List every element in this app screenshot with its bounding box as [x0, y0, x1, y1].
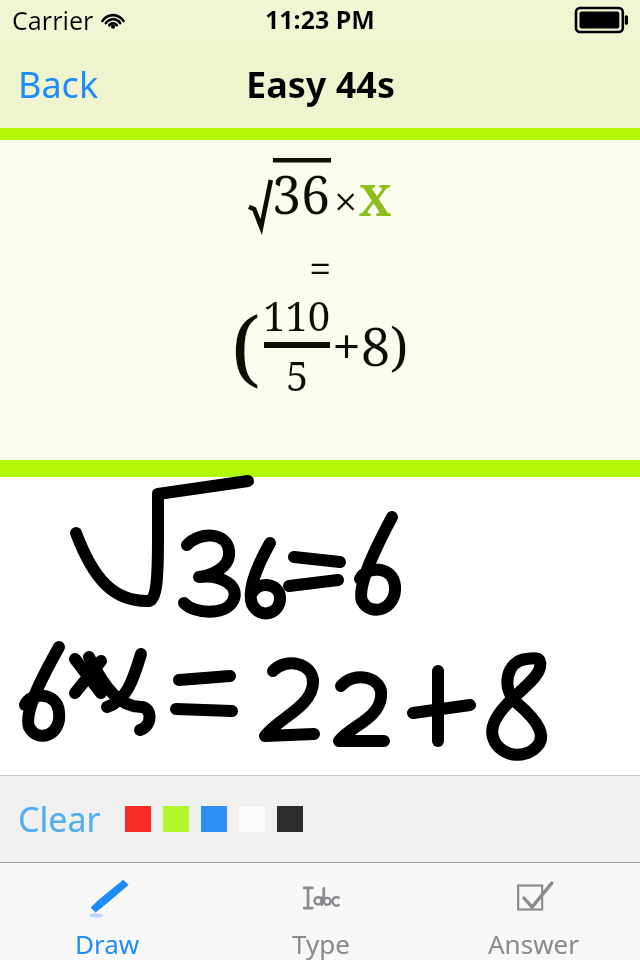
staticText: Draw [75, 926, 140, 960]
staticText: Clear [18, 796, 101, 842]
staticText: 110 [263, 288, 331, 342]
staticText: ( [231, 288, 261, 402]
staticText: X [359, 169, 392, 229]
staticText: 36 [272, 158, 331, 229]
staticText: 11:23 PM [265, 2, 375, 36]
button[interactable]: Answer [427, 863, 640, 960]
button[interactable]: Red [119, 800, 157, 838]
staticText: Carrier [12, 3, 94, 37]
button[interactable]: White [233, 800, 271, 838]
button[interactable]: Clear [12, 786, 107, 852]
staticText: +8) [332, 310, 409, 381]
staticText: Type [292, 926, 350, 960]
button[interactable]: Green [157, 800, 195, 838]
staticText: Easy 44s [246, 60, 395, 109]
staticText: × [334, 172, 358, 229]
button[interactable]: Black [271, 800, 309, 838]
staticText: Answer [488, 926, 579, 960]
button[interactable]: Type [214, 863, 427, 960]
button[interactable]: Back [0, 48, 117, 121]
staticText: = [309, 240, 332, 294]
staticText: 5 [286, 348, 309, 402]
button[interactable]: Blue [195, 800, 233, 838]
button[interactable]: Draw [0, 863, 214, 960]
staticText: Back [18, 60, 99, 109]
button[interactable]: Drawing canvas [0, 477, 640, 775]
